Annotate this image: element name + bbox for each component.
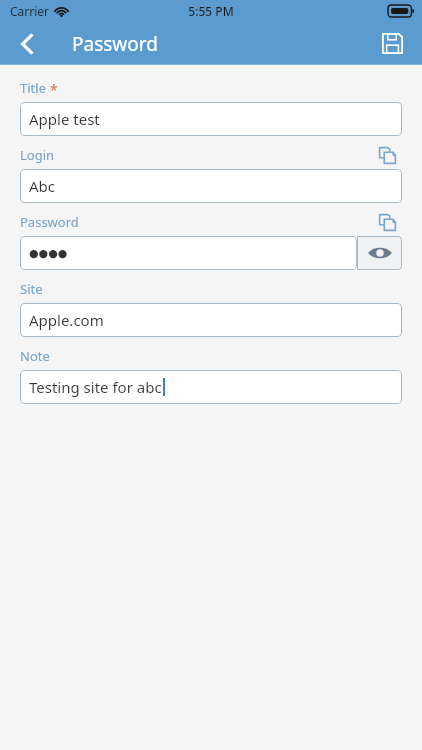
button[interactable]: Copy Password <box>372 211 402 233</box>
button[interactable]: ●●●● <box>20 236 357 270</box>
staticText: 5:55 PM <box>188 3 234 19</box>
button[interactable]: Testing site for abc <box>20 370 402 404</box>
staticText: Title <box>20 79 46 97</box>
button[interactable]: Abc <box>20 169 402 203</box>
button[interactable]: Copy Login <box>372 144 402 166</box>
staticText: Note <box>20 347 50 365</box>
staticText: Site <box>20 280 43 298</box>
button[interactable]: Apple.com <box>20 303 402 337</box>
button[interactable]: Apple test <box>20 102 402 136</box>
staticText: Apple.com <box>29 310 104 330</box>
staticText: Login <box>20 146 55 164</box>
button[interactable]: Back <box>6 22 50 65</box>
staticText: ●●●● <box>29 247 68 260</box>
staticText: Password <box>20 213 79 231</box>
button[interactable]: Save <box>370 22 414 65</box>
staticText: Password <box>72 31 158 57</box>
button[interactable]: Show password <box>357 236 402 270</box>
staticText: * <box>50 80 58 99</box>
staticText: Carrier <box>10 3 50 19</box>
staticText: Testing site for abc <box>29 377 162 397</box>
staticText: Apple test <box>29 109 100 129</box>
staticText: Abc <box>29 176 56 196</box>
